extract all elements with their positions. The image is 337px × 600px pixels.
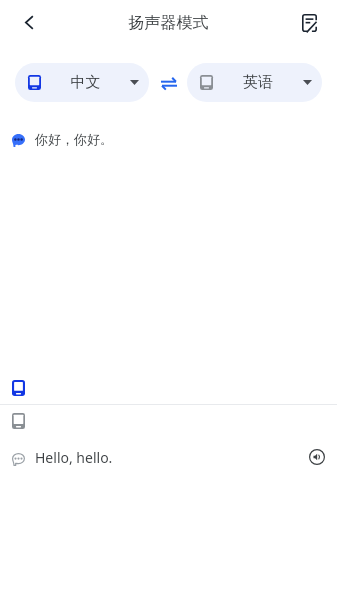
button[interactable]: 你好，你好。 [0, 102, 337, 142]
button[interactable]: 英语 [187, 63, 322, 102]
button[interactable]: Transcript [294, 8, 324, 38]
staticText: 英语 [213, 73, 303, 92]
button[interactable]: Play translation [306, 446, 328, 468]
button[interactable]: English microphone [0, 405, 337, 445]
staticText: 扬声器模式 [0, 13, 337, 33]
staticText: Hello, hello. [35, 448, 113, 467]
button[interactable]: Hello, hello. [12, 445, 325, 469]
button[interactable]: Swap languages [153, 63, 184, 102]
staticText: 你好，你好。 [35, 131, 113, 147]
button[interactable]: Chinese microphone active [0, 380, 337, 404]
staticText: 中文 [41, 73, 130, 92]
button[interactable]: Back [14, 8, 43, 37]
button[interactable]: 中文 [15, 63, 149, 102]
